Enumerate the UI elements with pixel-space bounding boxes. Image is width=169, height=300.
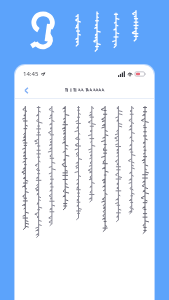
staticText: 14:45 bbox=[23, 70, 39, 78]
button[interactable]: Back bbox=[19, 83, 33, 97]
